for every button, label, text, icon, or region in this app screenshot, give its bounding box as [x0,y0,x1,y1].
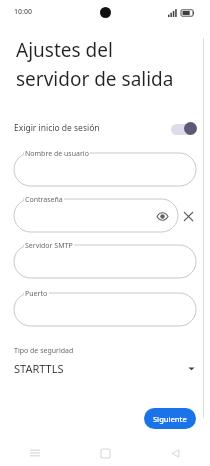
button[interactable]: Exigir inicio de sesión [0,114,210,142]
staticText: Nombre de usuario [25,149,89,159]
staticText: 10:00 [14,7,32,17]
button[interactable]: Exigir inicio de sesión [171,121,197,135]
button[interactable]: Borrar [181,209,195,223]
button[interactable]: Siguiente [144,408,196,429]
button[interactable]: Contraseña [14,199,178,232]
staticText: Siguiente [153,414,187,424]
staticText: Puerto [25,289,48,299]
button[interactable]: Recientes [0,440,70,466]
button[interactable]: Inicio [70,440,140,466]
staticText: Servidor SMTP [25,241,73,251]
staticText: Tipo de seguridad [14,346,74,356]
button[interactable]: Atrás [140,440,210,466]
button[interactable]: Mostrar contraseña [155,209,169,223]
button[interactable]: Servidor SMTP [14,245,196,278]
staticText: STARTTLS [14,361,64,376]
staticText: Ajustes del [16,37,113,63]
button[interactable]: Puerto [14,293,196,326]
staticText: servidor de salida [16,66,174,92]
staticText: Exigir inicio de sesión [14,122,100,134]
button[interactable]: Nombre de usuario [14,153,196,186]
button[interactable]: Tipo de seguridad [14,346,196,376]
staticText: Contraseña [25,195,63,205]
